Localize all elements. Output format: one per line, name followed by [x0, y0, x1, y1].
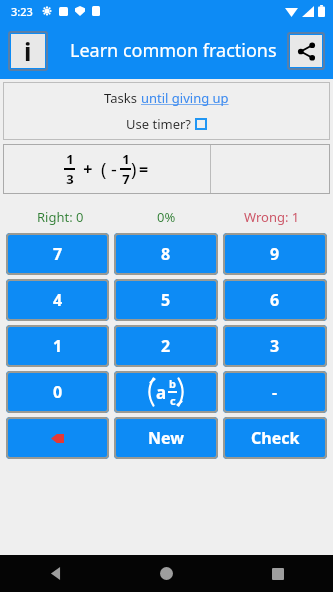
button[interactable]: Information — [11, 34, 45, 68]
button[interactable]: until giving up — [141, 89, 229, 107]
button[interactable]: New — [114, 417, 218, 459]
button[interactable]: Check — [223, 417, 327, 459]
staticText: 5 — [161, 289, 171, 311]
staticText: 6 — [270, 289, 280, 311]
staticText: Use timer? — [126, 115, 195, 133]
staticText: ) — [131, 157, 137, 182]
staticText: 3 — [270, 335, 280, 357]
staticText: 0% — [157, 208, 176, 226]
staticText: Tasks — [104, 89, 141, 107]
staticText: Learn common fractions — [70, 38, 277, 63]
staticText: 2 — [161, 335, 171, 357]
staticText: 8 — [161, 243, 171, 265]
button[interactable]: 3 — [223, 325, 327, 367]
button[interactable]: 6 — [223, 279, 327, 321]
staticText: - — [272, 381, 278, 403]
button[interactable]: 2 — [114, 325, 218, 367]
button[interactable]: 1 — [6, 325, 109, 367]
staticText: c — [170, 393, 176, 408]
staticText: until giving up — [141, 89, 229, 107]
staticText: 0 — [53, 381, 63, 403]
button[interactable]: Mixed fraction — [114, 371, 218, 413]
staticText: 4 — [53, 289, 63, 311]
button[interactable]: 9 — [223, 233, 327, 275]
button[interactable]: 8 — [114, 233, 218, 275]
staticText: 7 — [122, 170, 130, 188]
staticText: b — [169, 376, 176, 391]
button[interactable]: - — [223, 371, 327, 413]
button[interactable]: Recent apps — [222, 555, 333, 592]
staticText: 3:23 — [11, 4, 33, 19]
staticText: New — [148, 427, 184, 449]
staticText: 9 — [270, 243, 280, 265]
staticText: 1 — [122, 150, 130, 168]
button[interactable]: 4 — [6, 279, 109, 321]
staticText: ( - — [101, 157, 117, 182]
button[interactable]: Back — [0, 555, 111, 592]
staticText: + — [75, 158, 101, 180]
staticText: Right: 0 — [37, 208, 84, 226]
button[interactable] — [211, 144, 330, 194]
staticText: 3 — [66, 170, 74, 188]
button[interactable]: Home — [111, 555, 222, 592]
staticText: a — [156, 381, 167, 404]
button[interactable]: Use timer? — [126, 115, 207, 133]
staticText: Check — [251, 427, 300, 449]
staticText: 1 — [53, 335, 63, 357]
button[interactable]: 5 — [114, 279, 218, 321]
button[interactable]: Share — [290, 35, 322, 67]
staticText: i — [24, 34, 32, 68]
staticText: 7 — [53, 243, 63, 265]
button[interactable]: 7 — [6, 233, 109, 275]
staticText: Wrong: 1 — [244, 208, 300, 226]
button[interactable]: Backspace — [6, 417, 109, 459]
staticText: 1 — [66, 150, 74, 168]
button[interactable]: 0 — [6, 371, 109, 413]
staticText: = — [139, 158, 149, 180]
